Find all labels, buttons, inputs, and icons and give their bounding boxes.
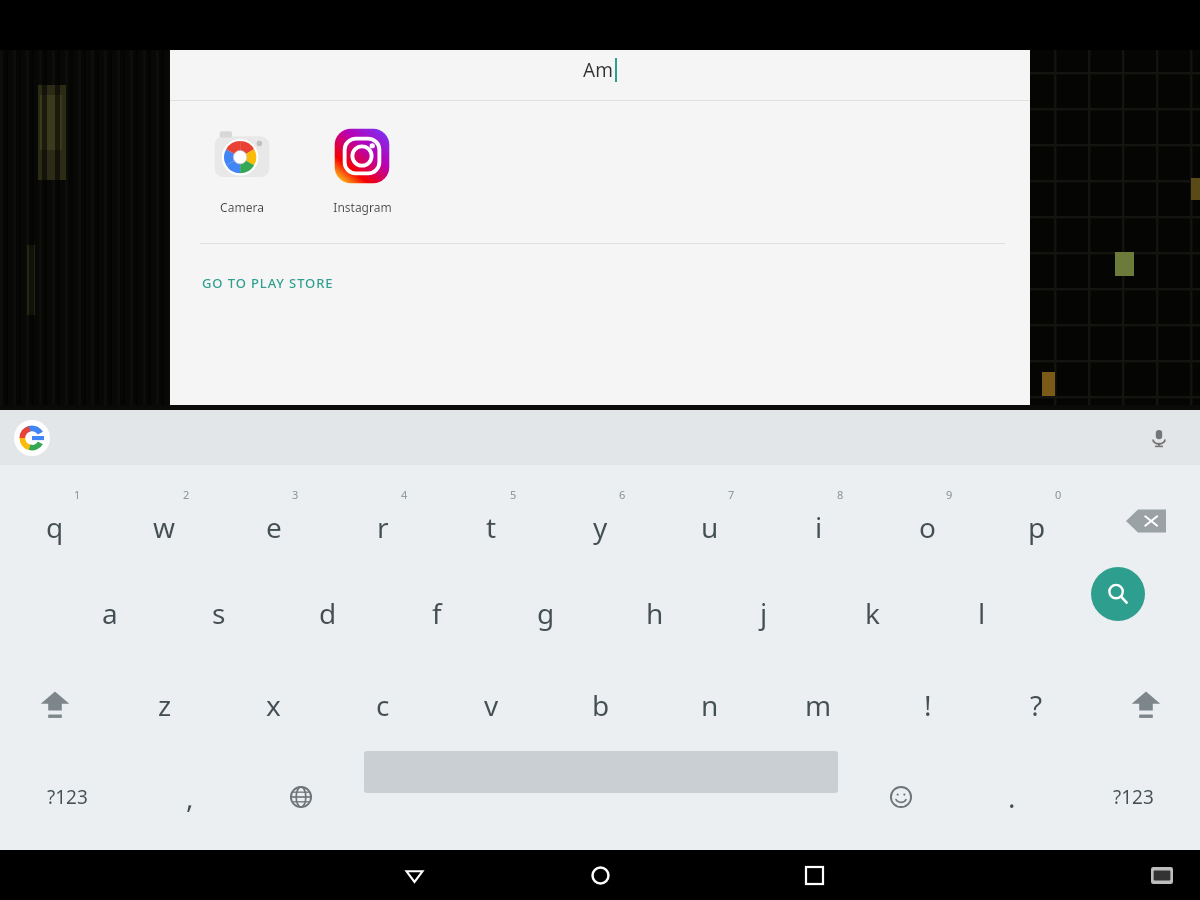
button[interactable]: n — [655, 659, 764, 751]
staticText: GO TO PLAY STORE — [202, 274, 334, 292]
button[interactable]: d — [273, 567, 382, 659]
staticText: Am — [583, 57, 613, 83]
staticText: 6 — [619, 487, 626, 502]
button[interactable]: Instagram — [302, 119, 422, 221]
staticText: k — [865, 594, 880, 632]
staticText: q — [46, 508, 64, 546]
button[interactable]: Camera — [182, 119, 302, 221]
button[interactable]: f — [382, 567, 491, 659]
button[interactable]: Shift — [1091, 659, 1200, 751]
staticText: . — [1008, 778, 1016, 816]
staticText: g — [537, 594, 555, 632]
button[interactable]: 3 — [219, 475, 328, 567]
staticText: ? — [1030, 686, 1043, 724]
staticText: 7 — [728, 487, 735, 502]
staticText: l — [978, 594, 986, 632]
button[interactable]: h — [600, 567, 709, 659]
button[interactable]: k — [818, 567, 927, 659]
button[interactable]: 9 — [873, 475, 982, 567]
staticText: v — [484, 686, 499, 724]
button[interactable]: m — [764, 659, 873, 751]
staticText: ?123 — [1113, 784, 1154, 810]
button[interactable]: Search — [1091, 567, 1145, 621]
button[interactable]: GO TO PLAY STORE — [200, 270, 336, 296]
button[interactable]: z — [110, 659, 219, 751]
staticText: n — [701, 686, 719, 724]
button[interactable]: c — [328, 659, 437, 751]
staticText: 9 — [946, 487, 953, 502]
button[interactable]: b — [546, 659, 655, 751]
staticText: d — [319, 594, 337, 632]
staticText: r — [377, 508, 389, 546]
button[interactable]: g — [491, 567, 600, 659]
staticText: p — [1028, 508, 1046, 546]
staticText: m — [805, 686, 832, 724]
button[interactable]: Change language — [245, 751, 356, 843]
staticText: y — [593, 508, 608, 546]
button[interactable]: ?123 — [1067, 751, 1200, 843]
button[interactable]: s — [164, 567, 273, 659]
button[interactable]: Backspace — [1091, 475, 1200, 567]
staticText: ! — [924, 686, 932, 724]
button[interactable]: 7 — [655, 475, 764, 567]
button[interactable]: Google — [14, 420, 50, 456]
button[interactable]: ?123 — [0, 751, 134, 843]
button[interactable]: a — [55, 567, 164, 659]
button[interactable]: Emoji — [845, 751, 956, 843]
staticText: a — [102, 594, 118, 632]
staticText: x — [266, 686, 281, 724]
staticText: ?123 — [47, 784, 88, 810]
staticText: o — [919, 508, 936, 546]
button[interactable]: Home — [576, 851, 624, 899]
button[interactable]: Back — [390, 851, 438, 899]
staticText: j — [760, 594, 768, 632]
button[interactable]: ? — [982, 659, 1091, 751]
staticText: z — [158, 686, 172, 724]
button[interactable]: l — [927, 567, 1036, 659]
staticText: 2 — [183, 487, 190, 502]
staticText: w — [153, 508, 176, 546]
staticText: 8 — [837, 487, 844, 502]
staticText: Instagram — [333, 199, 392, 215]
button[interactable]: 2 — [110, 475, 219, 567]
button[interactable]: Voice input — [1142, 421, 1176, 455]
button[interactable]: 1 — [0, 475, 110, 567]
staticText: u — [701, 508, 719, 546]
button[interactable]: , — [134, 751, 245, 843]
staticText: e — [266, 508, 282, 546]
button[interactable]: 0 — [982, 475, 1091, 567]
staticText: 3 — [292, 487, 299, 502]
button[interactable]: . — [956, 751, 1067, 843]
button[interactable]: ! — [873, 659, 982, 751]
staticText: , — [186, 778, 194, 816]
button[interactable]: v — [437, 659, 546, 751]
button[interactable]: Recent apps — [790, 851, 838, 899]
button[interactable]: 6 — [546, 475, 655, 567]
button[interactable]: j — [709, 567, 818, 659]
button[interactable]: 5 — [437, 475, 546, 567]
button[interactable]: 8 — [764, 475, 873, 567]
staticText: 4 — [401, 487, 408, 502]
staticText: t — [486, 508, 497, 546]
staticText: c — [376, 686, 390, 724]
staticText: s — [212, 594, 226, 632]
staticText: f — [432, 594, 442, 632]
staticText: 5 — [510, 487, 517, 502]
staticText: i — [815, 508, 823, 546]
staticText: 1 — [74, 487, 81, 502]
button[interactable]: Shift — [0, 659, 110, 751]
button[interactable]: Switch keyboard — [1142, 855, 1182, 895]
button[interactable]: x — [219, 659, 328, 751]
staticText: b — [592, 686, 610, 724]
staticText: h — [646, 594, 664, 632]
button[interactable]: 4 — [328, 475, 437, 567]
staticText: Camera — [220, 199, 264, 215]
staticText: 0 — [1055, 487, 1062, 502]
